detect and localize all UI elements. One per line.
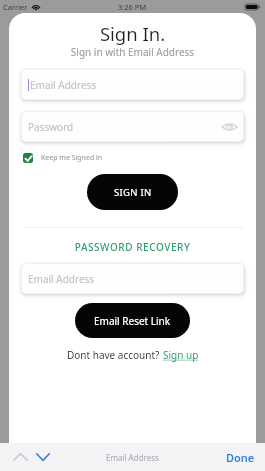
staticText: Keep me Signed in xyxy=(41,153,103,163)
staticText: Done xyxy=(226,450,255,465)
staticText: PASSWORD RECOVERY xyxy=(9,240,256,254)
button[interactable]: Previous field xyxy=(10,447,30,467)
button[interactable]: Password xyxy=(21,111,244,142)
button[interactable]: Sign up xyxy=(163,348,199,362)
staticText: Email Address xyxy=(30,78,97,92)
staticText: Email Reset Link xyxy=(94,314,171,328)
staticText: Email Address xyxy=(28,272,95,286)
button[interactable]: Email Address xyxy=(21,263,244,294)
button[interactable]: Done xyxy=(226,450,255,465)
button[interactable]: Keep me Signed in xyxy=(23,153,103,163)
staticText: Sign In. xyxy=(9,21,256,46)
staticText: Carrier xyxy=(3,2,28,12)
button[interactable]: Next field xyxy=(33,447,53,467)
staticText: Email Address xyxy=(106,452,159,463)
button[interactable]: Email Address xyxy=(21,69,244,100)
button[interactable]: SIGN IN xyxy=(87,174,178,210)
staticText: Dont have account? xyxy=(67,348,163,362)
staticText: Sign in with Email Address xyxy=(9,45,256,59)
staticText: Password xyxy=(28,120,74,134)
staticText: 3:26 PM xyxy=(118,2,147,12)
button[interactable]: Email Reset Link xyxy=(75,303,190,338)
staticText: SIGN IN xyxy=(114,186,152,199)
